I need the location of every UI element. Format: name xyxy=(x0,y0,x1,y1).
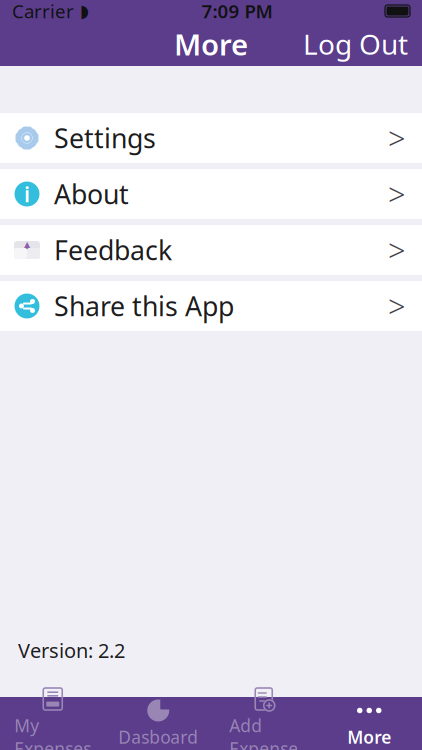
button[interactable]: ▲ xyxy=(0,225,422,275)
button[interactable]: Dasboard xyxy=(105,697,211,750)
staticText: Share this App xyxy=(54,288,234,324)
button[interactable]: Add Expense xyxy=(211,697,316,750)
staticText: More xyxy=(347,725,391,748)
staticText: i xyxy=(24,180,30,208)
staticText: More xyxy=(174,24,248,63)
button[interactable]: Settings xyxy=(0,113,422,163)
button[interactable]: Log Out xyxy=(289,17,422,71)
staticText: About xyxy=(54,176,129,212)
staticText: My Expenses xyxy=(14,714,91,750)
staticText: > xyxy=(388,230,406,270)
button[interactable]: Share this App xyxy=(0,281,422,331)
staticText: Feedback xyxy=(54,232,172,268)
staticText: > xyxy=(388,118,406,158)
button[interactable]: i xyxy=(0,169,422,219)
staticText: Dasboard xyxy=(118,725,198,748)
staticText: ◗ xyxy=(74,1,89,21)
staticText: Log Out xyxy=(303,25,408,63)
staticText: > xyxy=(388,174,406,214)
staticText: Version: 2.2 xyxy=(18,637,125,664)
staticText: ▲ xyxy=(23,239,31,251)
button[interactable]: My Expenses xyxy=(0,697,105,750)
staticText: Add Expense xyxy=(229,714,298,750)
staticText: Carrier xyxy=(12,0,74,23)
staticText: 7:09 PM xyxy=(201,0,272,23)
button[interactable]: More xyxy=(316,697,422,750)
staticText: > xyxy=(388,286,406,326)
staticText: Settings xyxy=(54,120,156,156)
